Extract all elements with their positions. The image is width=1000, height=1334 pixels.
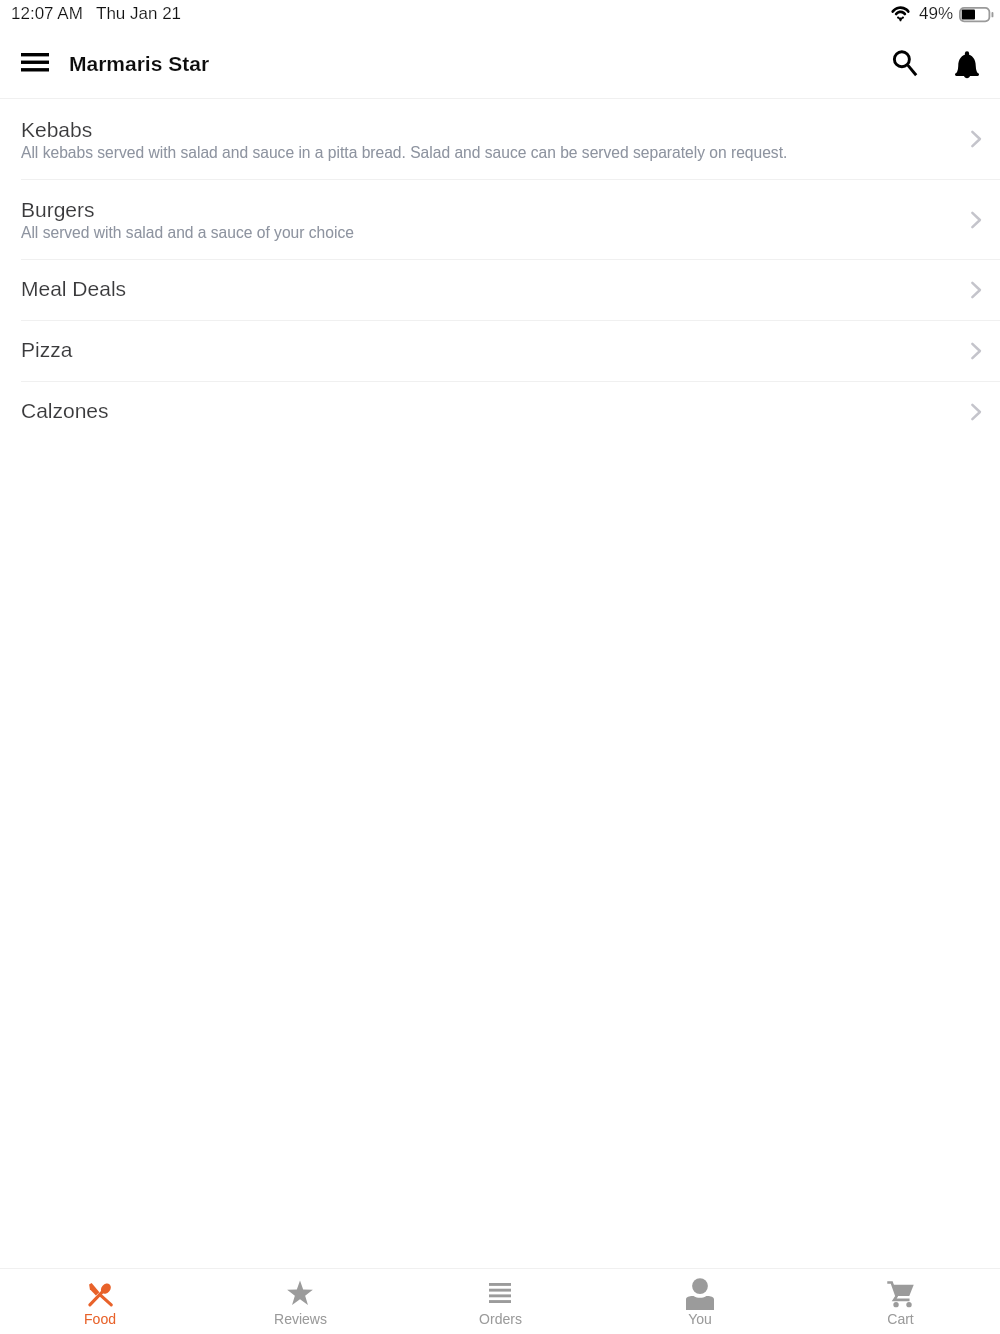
staticText: Calzones	[21, 399, 109, 422]
staticText: 49%	[919, 4, 954, 23]
staticText: Kebabs	[21, 118, 93, 141]
button[interactable]: Search	[874, 33, 936, 95]
button[interactable]: Burgers	[0, 180, 1000, 260]
staticText: All kebabs served with salad and sauce i…	[21, 144, 788, 161]
button[interactable]: Calzones	[0, 382, 1000, 443]
button[interactable]: Reviews	[200, 1269, 400, 1334]
button[interactable]: Cart	[800, 1269, 1000, 1334]
button[interactable]: Notifications	[936, 33, 998, 95]
staticText: All served with salad and a sauce of you…	[21, 224, 354, 241]
staticText: Food	[84, 1311, 116, 1327]
staticText: Cart	[887, 1311, 914, 1327]
button[interactable]: Kebabs	[0, 99, 1000, 180]
staticText: Burgers	[21, 198, 95, 221]
button[interactable]: Meal Deals	[0, 260, 1000, 321]
button[interactable]: Orders	[400, 1269, 600, 1334]
staticText: Marmaris Star	[69, 52, 210, 75]
staticText: 12:07 AM	[11, 4, 83, 23]
button[interactable]: You	[600, 1269, 800, 1334]
staticText: Pizza	[21, 338, 73, 361]
staticText: Reviews	[274, 1311, 327, 1327]
staticText: Thu Jan 21	[96, 4, 182, 23]
button[interactable]: Pizza	[0, 321, 1000, 382]
staticText: Meal Deals	[21, 277, 127, 300]
staticText: You	[688, 1311, 712, 1327]
button[interactable]: Open navigation menu	[1, 30, 69, 98]
staticText: Orders	[479, 1311, 522, 1327]
button[interactable]: Food	[0, 1269, 200, 1334]
